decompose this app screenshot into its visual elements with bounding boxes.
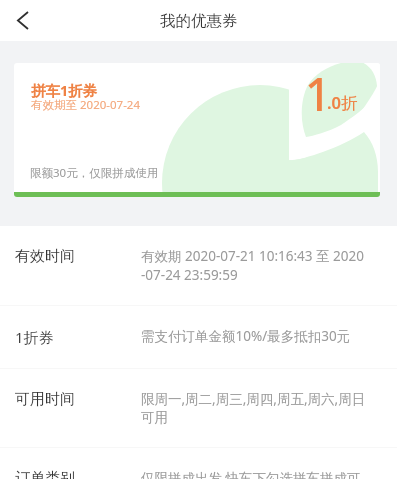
staticText: 限周一,周二,周三,周四,周五,周六,周日 可用: [141, 390, 366, 426]
staticText: 我的优惠券: [160, 11, 238, 31]
staticText: 有效期至 2020-07-24: [31, 97, 141, 113]
staticText: 可用时间: [15, 390, 141, 409]
staticText: 订单类别: [15, 469, 141, 479]
staticText: 需支付订单金额10%/最多抵扣30元: [141, 327, 351, 345]
button[interactable]: Back: [0, 0, 44, 41]
staticText: 拼车1折券: [31, 80, 98, 100]
staticText: .0折: [327, 91, 358, 114]
button[interactable]: 有效时间: [0, 226, 397, 305]
staticText: 1: [305, 63, 331, 124]
button[interactable]: 订单类别: [0, 448, 397, 500]
button[interactable]: 拼车1折券: [14, 63, 380, 197]
staticText: 仅限拼成出发,快车下勾选拼车拼成可用: [141, 469, 372, 479]
staticText: 有效时间: [15, 247, 141, 266]
staticText: 1折券: [15, 327, 141, 347]
button[interactable]: 可用时间: [0, 369, 397, 447]
button[interactable]: 1折券: [0, 306, 397, 368]
staticText: 有效期 2020-07-21 10:16:43 至 2020 -07-24 23…: [141, 247, 364, 284]
staticText: 限额30元，仅限拼成使用: [30, 165, 159, 181]
